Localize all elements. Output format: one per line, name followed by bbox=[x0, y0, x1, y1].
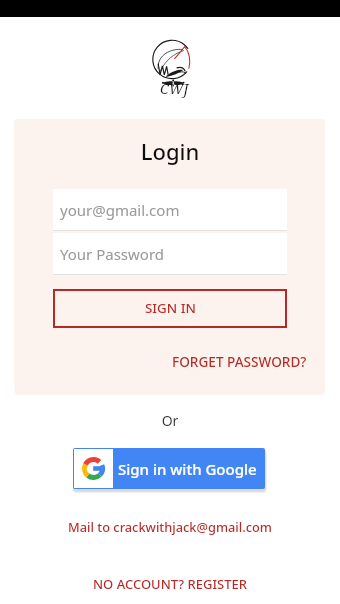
button[interactable]: Mail to crackwithjack@gmail.com bbox=[64, 516, 276, 537]
staticText: Or bbox=[0, 411, 340, 430]
staticText: CWJ bbox=[160, 79, 189, 98]
button[interactable]: SIGN IN bbox=[53, 289, 287, 328]
button[interactable]: Sign in with Google bbox=[73, 448, 265, 489]
staticText: Mail to crackwithjack@gmail.com bbox=[68, 518, 272, 535]
staticText: Your Password bbox=[60, 244, 165, 264]
staticText: Sign in with Google bbox=[118, 459, 257, 479]
staticText: your@gmail.com bbox=[60, 200, 180, 220]
button[interactable]: Your Password bbox=[53, 233, 287, 275]
staticText: SIGN IN bbox=[145, 299, 196, 317]
other: CWJ logo bbox=[148, 40, 196, 98]
staticText: Login bbox=[0, 136, 340, 166]
staticText: FORGET PASSWORD? bbox=[172, 352, 307, 371]
button[interactable]: your@gmail.com bbox=[53, 189, 287, 231]
button[interactable]: FORGET PASSWORD? bbox=[172, 352, 307, 371]
button[interactable]: NO ACCOUNT? REGISTER bbox=[89, 573, 251, 595]
staticText: NO ACCOUNT? REGISTER bbox=[93, 575, 247, 593]
